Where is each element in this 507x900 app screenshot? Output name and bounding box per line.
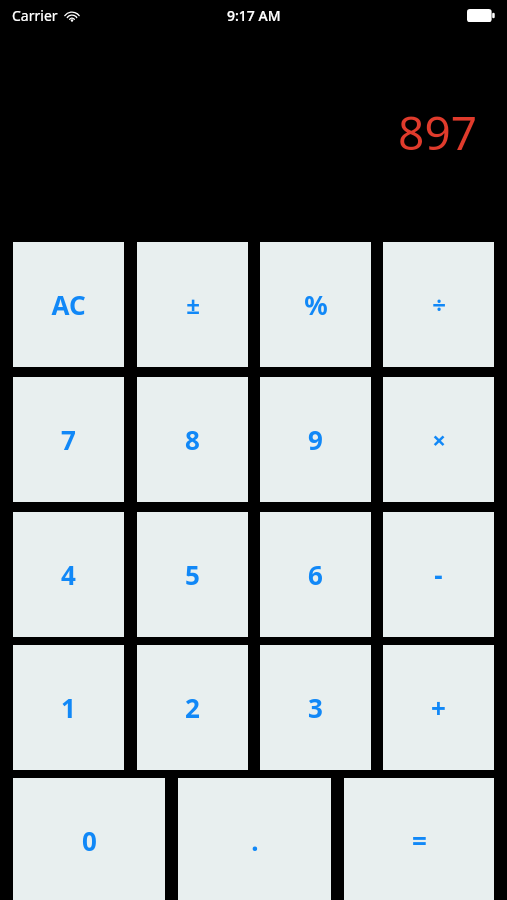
staticText: 897	[398, 101, 477, 164]
staticText: 4	[61, 557, 76, 592]
button[interactable]: 6	[260, 512, 371, 637]
staticText: 2	[185, 690, 200, 725]
button[interactable]: ÷	[383, 242, 494, 367]
staticText: =	[412, 823, 427, 858]
staticText: .	[251, 823, 259, 858]
staticText: 5	[185, 557, 200, 592]
button[interactable]: .	[178, 778, 331, 900]
staticText: +	[431, 690, 446, 725]
button[interactable]: 9	[260, 377, 371, 502]
staticText: %	[304, 287, 328, 322]
staticText: 8	[185, 422, 200, 457]
staticText: 1	[61, 690, 76, 725]
staticText: 0	[82, 823, 97, 858]
button[interactable]: 1	[13, 645, 124, 770]
button[interactable]: ±	[137, 242, 248, 367]
staticText: AC	[51, 287, 86, 322]
button[interactable]: 3	[260, 645, 371, 770]
button[interactable]: 5	[137, 512, 248, 637]
button[interactable]: 2	[137, 645, 248, 770]
button[interactable]: +	[383, 645, 494, 770]
staticText: 3	[308, 690, 323, 725]
button[interactable]: 7	[13, 377, 124, 502]
button[interactable]: -	[383, 512, 494, 637]
button[interactable]: %	[260, 242, 371, 367]
staticText: 6	[308, 557, 323, 592]
staticText: ÷	[432, 288, 446, 321]
staticText: ±	[186, 288, 200, 321]
staticText: 7	[61, 422, 76, 457]
button[interactable]: AC	[13, 242, 124, 367]
staticText: -	[434, 557, 443, 592]
staticText: 9	[308, 422, 323, 457]
button[interactable]: 8	[137, 377, 248, 502]
staticText: ×	[432, 423, 446, 456]
button[interactable]: =	[344, 778, 494, 900]
staticText: Carrier	[12, 6, 58, 25]
button[interactable]: ×	[383, 377, 494, 502]
staticText: 9:17 AM	[227, 6, 281, 25]
button[interactable]: 0	[13, 778, 165, 900]
button[interactable]: 4	[13, 512, 124, 637]
